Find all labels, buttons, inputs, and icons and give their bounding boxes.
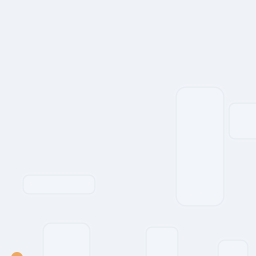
button[interactable]: Account [11, 252, 23, 256]
